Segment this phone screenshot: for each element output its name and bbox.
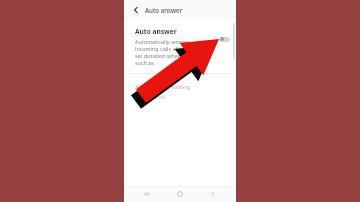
staticText: Automatically answer <box>135 38 190 45</box>
staticText: set duration when <box>135 52 182 59</box>
staticText: incoming calls after a <box>135 45 189 52</box>
button[interactable]: Home <box>175 189 185 199</box>
button[interactable]: Back <box>131 5 141 15</box>
staticText: such as <box>135 59 154 66</box>
staticText: Auto answer <box>135 27 177 36</box>
button[interactable]: Auto answer toggle <box>219 36 230 42</box>
button[interactable]: Auto answer timing <box>124 82 236 103</box>
button[interactable]: Back <box>124 0 236 20</box>
staticText: Auto answer <box>145 6 183 14</box>
staticText: In 2 seconds <box>135 93 166 100</box>
button[interactable]: Auto answer <box>124 25 236 70</box>
button[interactable]: Recent apps <box>142 189 152 199</box>
staticText: Auto answer timing <box>135 83 191 91</box>
button[interactable]: Back <box>208 189 218 199</box>
